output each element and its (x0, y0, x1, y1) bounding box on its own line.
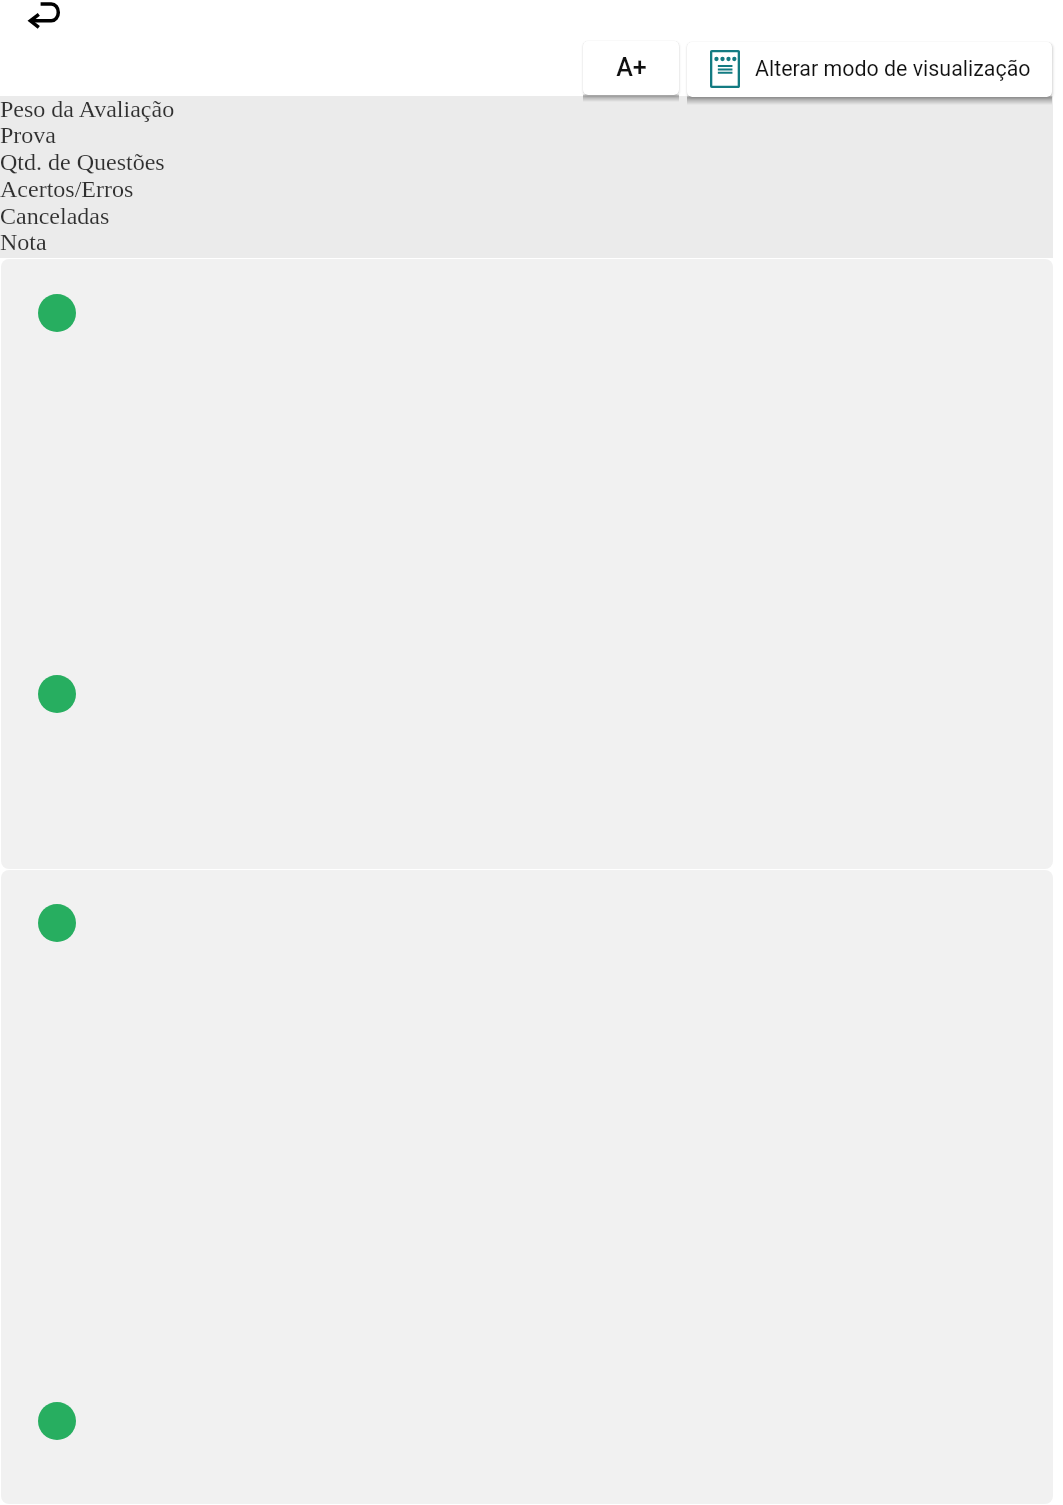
staticText: Prova (0, 122, 56, 149)
staticText: A+ (616, 53, 647, 82)
button[interactable] (1, 259, 1053, 869)
staticText: Nota (0, 229, 47, 256)
button[interactable]: Alterar modo de visualização (687, 42, 1052, 97)
staticText: Canceladas (0, 203, 110, 230)
staticText: Acertos/Erros (0, 176, 134, 203)
button[interactable] (1, 870, 1053, 1504)
button[interactable]: A+ (583, 41, 679, 95)
staticText: Peso da Avaliação (0, 96, 175, 123)
staticText: Alterar modo de visualização (755, 56, 1031, 81)
button[interactable]: Voltar (14, 0, 74, 60)
staticText: Qtd. de Questões (0, 149, 165, 176)
